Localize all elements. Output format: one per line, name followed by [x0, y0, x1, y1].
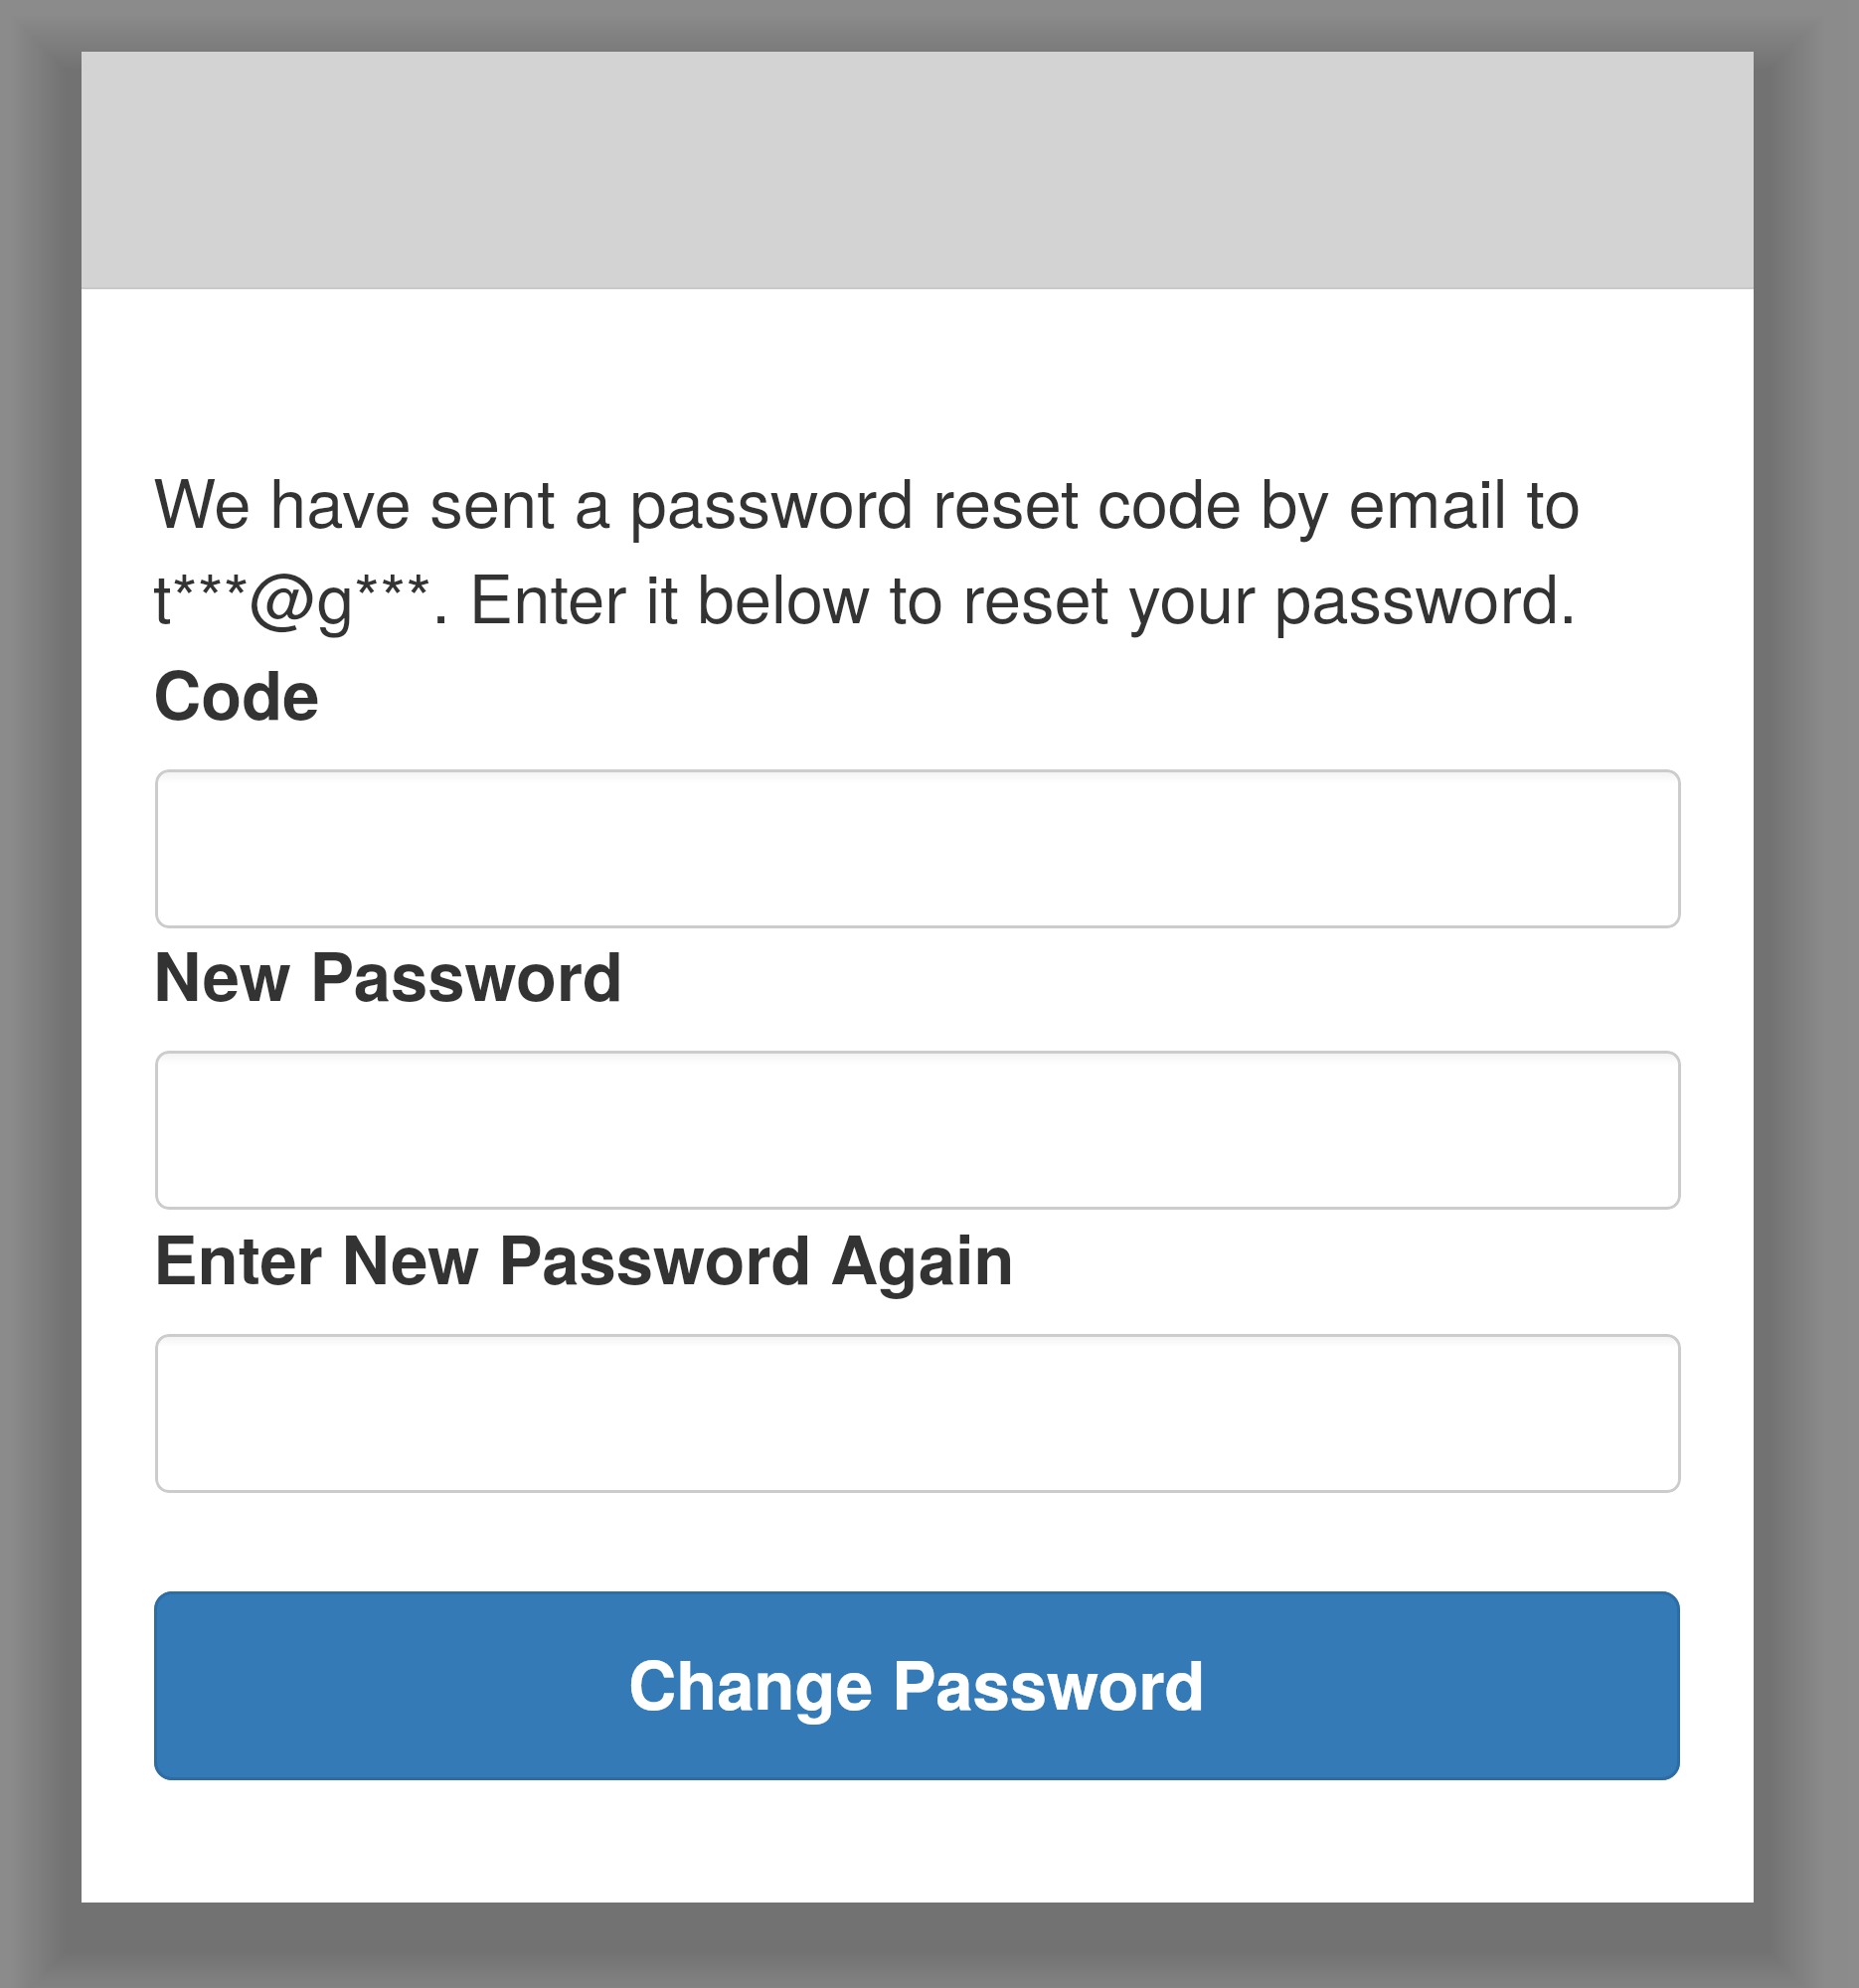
button[interactable]: Code [155, 769, 1681, 928]
staticText: Code [153, 645, 320, 741]
button[interactable]: New Password [155, 1051, 1681, 1210]
staticText: We have sent a password reset code by em… [153, 451, 1679, 642]
staticText: Enter New Password Again [153, 1210, 1015, 1305]
button[interactable]: Change Password [154, 1591, 1680, 1780]
staticText: Change Password [628, 1635, 1206, 1731]
staticText: New Password [153, 926, 623, 1022]
button[interactable]: Enter New Password Again [155, 1334, 1681, 1493]
